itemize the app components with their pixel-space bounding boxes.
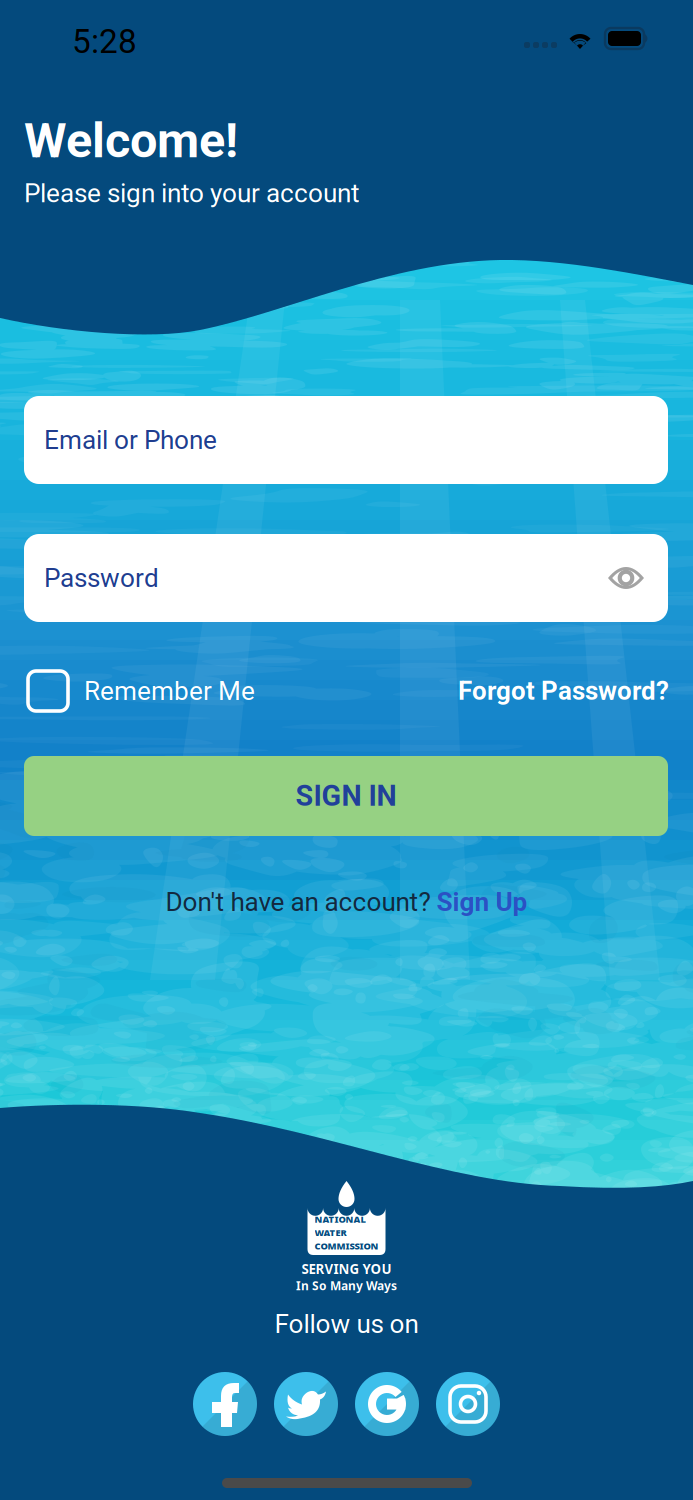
button[interactable]: Facebook: [193, 1372, 257, 1436]
button[interactable]: Remember Me: [28, 671, 255, 711]
staticText: WATER: [314, 1226, 346, 1239]
staticText: Please sign into your account: [24, 178, 360, 209]
button[interactable]: Instagram: [436, 1372, 500, 1436]
staticText: Sign Up: [436, 887, 527, 917]
button[interactable]: Twitter: [274, 1372, 338, 1436]
staticText: 5:28: [72, 22, 137, 61]
staticText: SERVING YOU: [301, 1260, 391, 1278]
staticText: Don't have an account?: [165, 887, 436, 917]
staticText: Email or Phone: [44, 425, 217, 455]
staticText: Remember Me: [84, 676, 255, 706]
staticText: COMMISSION: [314, 1240, 378, 1252]
staticText: Password: [44, 563, 159, 593]
staticText: Forgot Password?: [458, 676, 669, 706]
staticText: Welcome!: [24, 112, 238, 169]
staticText: Follow us on: [274, 1309, 418, 1339]
staticText: NATIONAL: [314, 1213, 365, 1225]
staticText: In So Many Ways: [296, 1278, 397, 1294]
button[interactable]: Google: [355, 1372, 419, 1436]
button[interactable]: Password: [24, 534, 668, 622]
button[interactable]: Don't have an account?: [0, 882, 693, 922]
button[interactable]: Email or Phone: [24, 396, 668, 484]
button[interactable]: Forgot Password?: [458, 676, 669, 706]
staticText: SIGN IN: [295, 779, 396, 813]
button[interactable]: SIGN IN: [24, 756, 668, 836]
